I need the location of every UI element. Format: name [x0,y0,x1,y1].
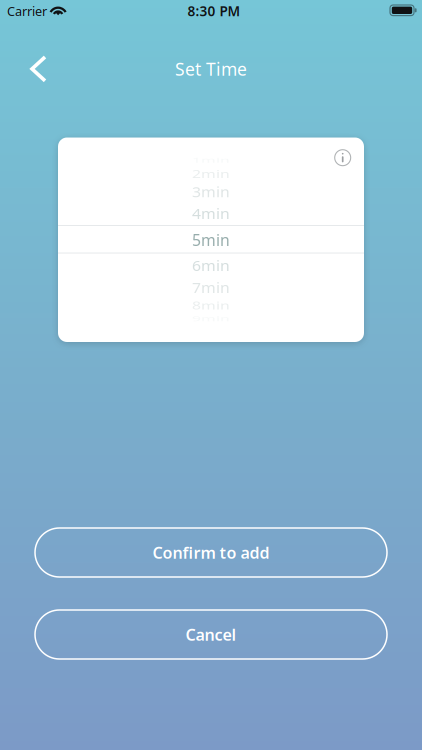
button[interactable]: 1min [58,149,364,171]
staticText: 7min [192,277,230,298]
staticText: 5min [192,229,230,250]
button[interactable]: Back [15,46,61,92]
staticText: 4min [192,202,230,224]
button[interactable]: 7min [58,277,364,299]
staticText: Confirm to add [152,542,269,563]
staticText: 8min [192,294,230,316]
button[interactable]: Confirm to add [35,528,387,577]
button[interactable]: 5min [58,226,364,253]
button[interactable]: 6min [58,254,364,276]
staticText: Carrier [7,2,47,20]
button[interactable]: Information [327,142,359,174]
staticText: Cancel [185,624,236,645]
button[interactable]: 2min [58,163,364,185]
button[interactable]: 4min [58,202,364,224]
staticText: 6min [192,254,230,276]
staticText: Set Time [175,57,247,81]
staticText: 2min [192,163,230,184]
button[interactable]: Cancel [35,610,387,659]
staticText: 3min [192,181,230,203]
staticText: 8:30 PM [187,2,240,20]
button[interactable]: 3min [58,181,364,203]
